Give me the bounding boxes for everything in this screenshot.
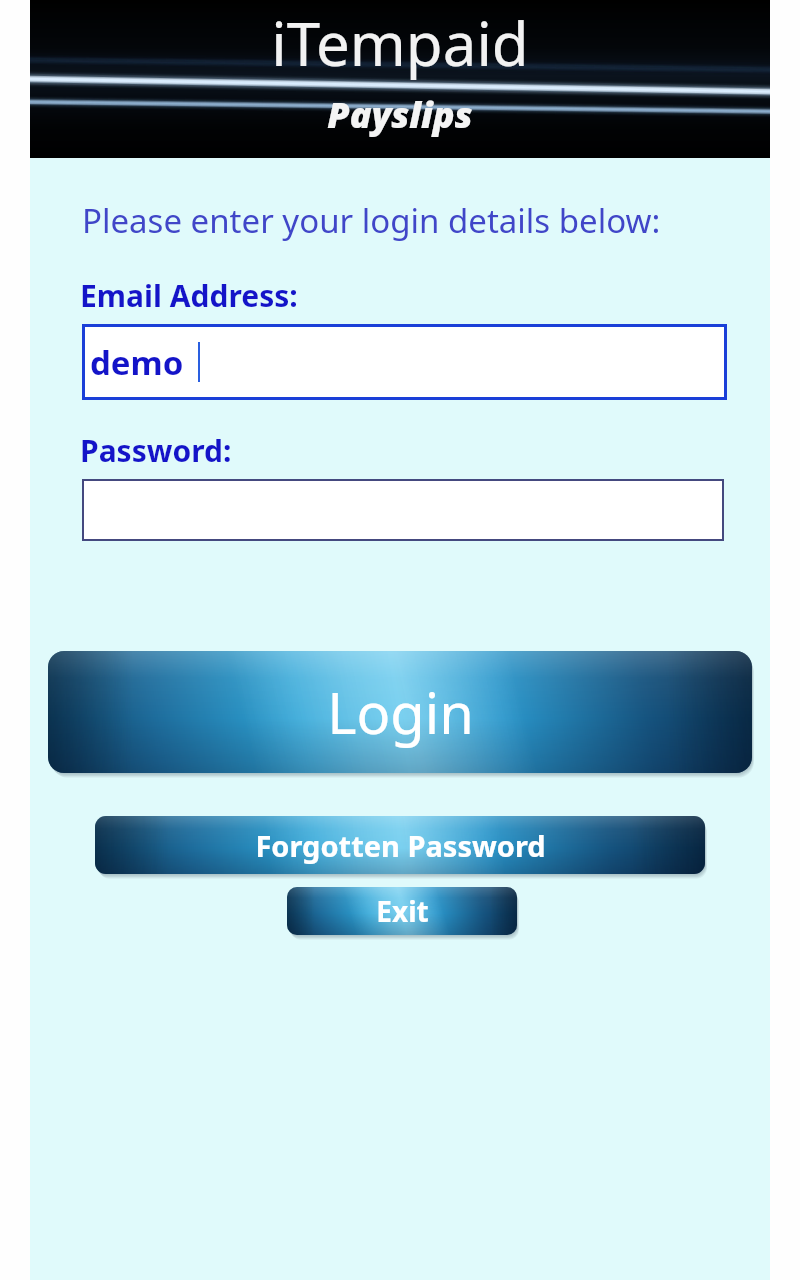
staticText: Email Address: [80,275,298,316]
button[interactable]: Login [48,651,752,773]
button[interactable]: Password input [82,479,724,541]
staticText: iTempaid [271,2,529,84]
button[interactable]: Email Address input [82,324,727,400]
button[interactable]: Forgotten Password [95,816,705,874]
button[interactable]: Exit [287,887,517,935]
staticText: Password: [80,430,232,471]
staticText: Payslips [327,90,473,139]
staticText: Forgotten Password [255,826,546,865]
staticText: demo [90,340,184,385]
staticText: Please enter your login details below: [82,198,661,243]
staticText: Login [327,674,474,750]
staticText: Exit [376,892,429,930]
